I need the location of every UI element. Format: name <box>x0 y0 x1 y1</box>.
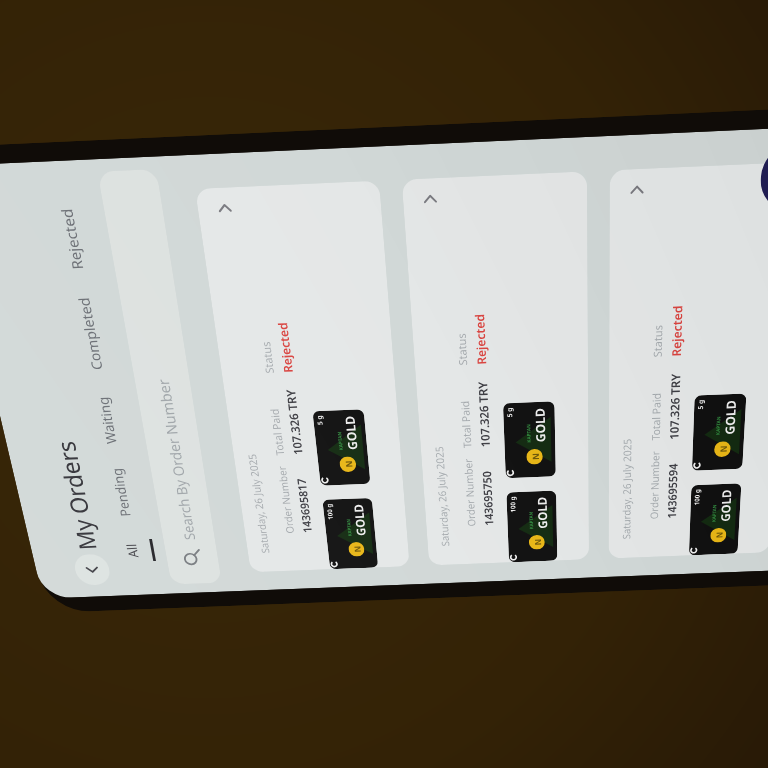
staticText: KAPTAN <box>715 416 723 435</box>
staticText: Status <box>453 332 470 366</box>
button[interactable]: Rejected <box>56 207 99 270</box>
staticText: Order Number <box>460 458 478 527</box>
staticText: N <box>532 538 543 545</box>
staticText: N <box>342 460 354 468</box>
staticText: Rejected <box>668 305 685 357</box>
button[interactable]: Saturday, 26 July 2025 <box>402 171 589 565</box>
button[interactable]: Saturday, 26 July 2025 <box>609 162 768 559</box>
button[interactable]: Waiting <box>93 395 131 444</box>
staticText: Rejected <box>56 207 88 270</box>
button[interactable]: Details <box>622 175 651 205</box>
staticText: Order Number <box>274 465 297 534</box>
button[interactable]: Back <box>72 553 112 586</box>
staticText: GOLD <box>717 489 735 522</box>
staticText: Pending <box>107 467 134 517</box>
button[interactable]: Saturday, 26 July 2025 <box>195 181 410 572</box>
button[interactable]: Details <box>209 194 240 224</box>
staticText: GOLD <box>340 415 361 450</box>
staticText: 107.326 TRY <box>474 381 493 447</box>
staticText: Saturday, 26 July 2025 <box>619 438 634 539</box>
staticText: Saturday, 26 July 2025 <box>244 454 272 553</box>
staticText: 107.326 TRY <box>282 389 306 455</box>
staticText: N <box>717 445 729 453</box>
staticText: GOLD <box>533 496 551 529</box>
staticText: GOLD <box>531 407 549 443</box>
staticText: GOLD <box>721 399 740 435</box>
staticText: 100 g <box>325 503 336 520</box>
staticText: N <box>351 545 363 552</box>
button[interactable]: Details <box>415 184 444 215</box>
button[interactable]: Completed <box>73 296 118 370</box>
staticText: KAPTAN <box>525 424 533 443</box>
staticText: Order Number <box>647 450 662 519</box>
staticText: 100 g <box>508 496 518 513</box>
staticText: Waiting <box>93 396 121 444</box>
staticText: All <box>122 543 142 558</box>
staticText: N <box>713 531 725 538</box>
staticText: 107.326 TRY <box>666 373 683 440</box>
staticText: 5 g <box>696 399 706 410</box>
staticText: Saturday, 26 July 2025 <box>431 446 452 547</box>
button[interactable]: Pending <box>107 467 145 517</box>
staticText: Completed <box>73 296 107 370</box>
button[interactable]: All <box>121 539 156 562</box>
staticText: Rejected <box>274 322 296 373</box>
staticText: KAPTAN <box>345 519 354 536</box>
staticText: KAPTAN <box>528 512 535 529</box>
staticText: Status <box>650 324 666 358</box>
staticText: 143695750 <box>478 471 496 526</box>
staticText: Search By Order Number <box>153 378 199 540</box>
button[interactable]: Support <box>759 140 768 213</box>
staticText: 5 g <box>505 407 515 417</box>
staticText: KAPTAN <box>336 432 345 450</box>
staticText: Rejected <box>471 313 489 365</box>
staticText: 5 g <box>315 414 326 425</box>
button[interactable]: Search By Order Number <box>97 169 222 584</box>
staticText: 143695594 <box>664 463 681 519</box>
staticText: 100 g <box>693 488 703 505</box>
staticText: KAPTAN <box>711 504 718 522</box>
staticText: GOLD <box>349 503 370 536</box>
staticText: N <box>529 452 541 460</box>
staticText: 143695817 <box>293 478 315 533</box>
staticText: Status <box>258 341 277 374</box>
staticText: My Orders <box>48 440 103 551</box>
staticText: Total Paid <box>266 408 287 456</box>
staticText: Total Paid <box>457 400 474 448</box>
staticText: Total Paid <box>648 392 664 441</box>
